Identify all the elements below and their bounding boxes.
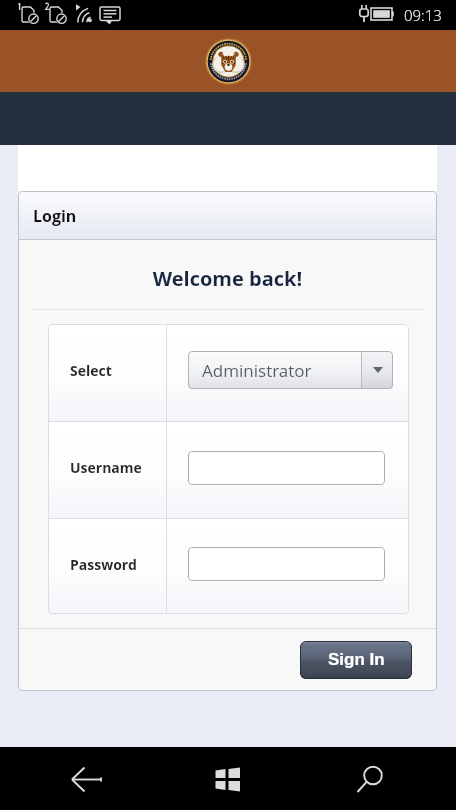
staticText: Password [70,555,137,574]
staticText: 09:13 [404,5,442,25]
button[interactable]: Administrator [188,351,393,389]
staticText: Sign In [328,650,385,669]
button[interactable]: Start [142,747,294,810]
button[interactable] [188,547,385,581]
button[interactable]: Search [294,747,456,810]
staticText: Login [33,205,77,227]
staticText: Administrator [202,359,312,382]
button[interactable]: Sign In [300,641,412,679]
staticText: Select [70,361,112,380]
button[interactable] [188,451,385,485]
staticText: Username [70,458,142,477]
staticText: Welcome back! [18,265,437,292]
button[interactable]: Back [0,747,142,810]
